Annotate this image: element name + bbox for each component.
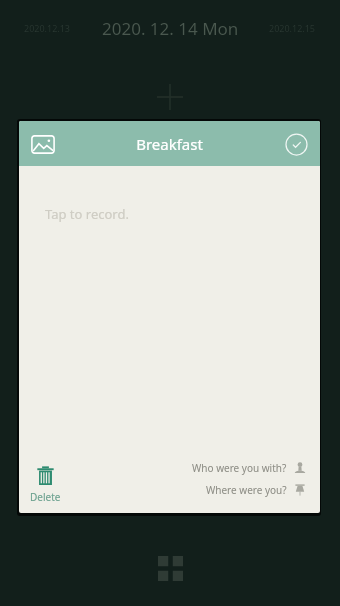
staticText: Delete — [30, 490, 61, 504]
button[interactable]: Where were you? — [206, 483, 307, 497]
button[interactable]: 2020.12.13 — [18, 16, 77, 40]
staticText: Who were you with? — [192, 461, 287, 475]
button[interactable]: 2020.12.15 — [263, 16, 322, 40]
staticText: 2020.12.15 — [269, 22, 316, 34]
staticText: 2020. 12. 14 Mon — [102, 17, 239, 40]
button[interactable]: All entries — [150, 548, 190, 588]
button[interactable]: Add entry — [150, 77, 190, 117]
staticText: Where were you? — [206, 483, 287, 497]
staticText: Breakfast — [61, 134, 278, 154]
button[interactable]: Delete — [30, 466, 61, 504]
button[interactable]: Add photo — [25, 126, 61, 162]
button[interactable]: Confirm — [278, 126, 314, 162]
staticText: 2020.12.13 — [24, 22, 71, 34]
button[interactable]: Who were you with? — [192, 461, 307, 475]
button[interactable]: 2020. 12. 14 Mon — [96, 11, 245, 46]
staticText: Tap to record. — [45, 205, 129, 223]
